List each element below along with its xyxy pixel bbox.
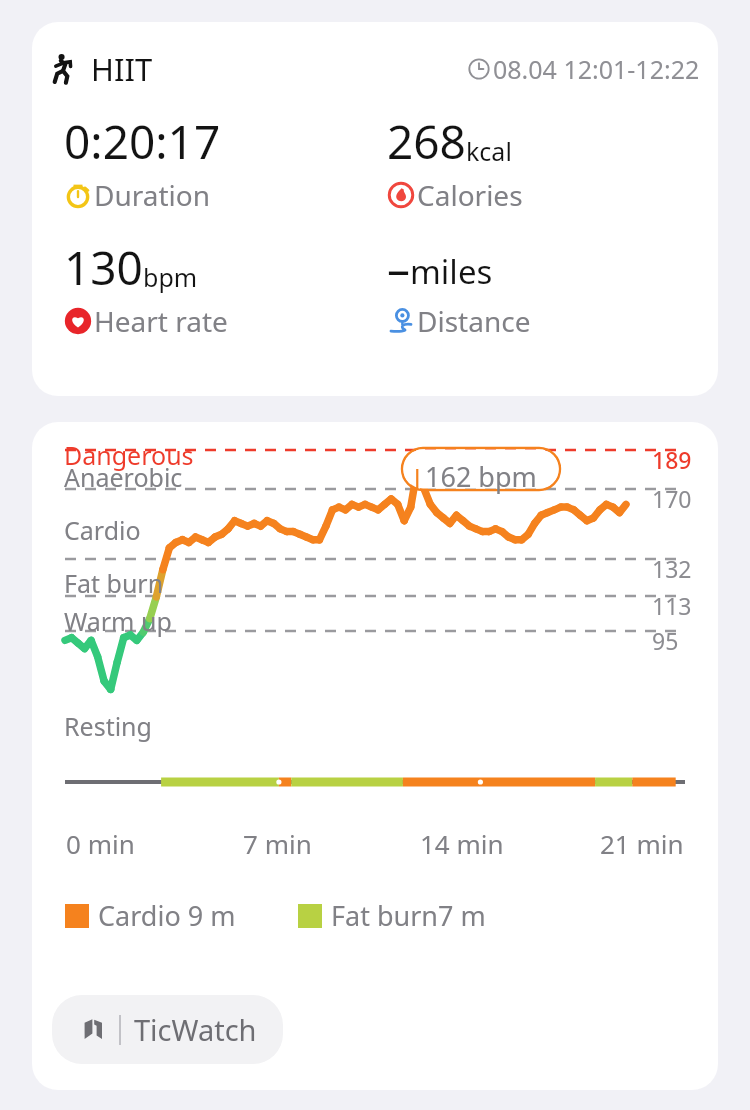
staticText: kcal: [466, 134, 512, 168]
staticText: 21 min: [600, 826, 684, 861]
staticText: 268: [387, 110, 466, 173]
staticText: 132: [652, 553, 692, 584]
staticText: Anaerobic: [64, 460, 183, 494]
staticText: Calories: [417, 176, 523, 214]
staticText: HIIT: [91, 48, 153, 90]
staticText: 0 min: [66, 826, 135, 861]
staticText: –: [387, 236, 410, 299]
staticText: 170: [652, 483, 692, 514]
staticText: 14 min: [420, 826, 504, 861]
button[interactable]: TicWatch: [52, 995, 283, 1064]
staticText: 162 bpm: [425, 458, 537, 495]
staticText: 7 min: [243, 826, 312, 861]
staticText: TicWatch: [134, 1010, 257, 1049]
staticText: 130: [64, 236, 143, 299]
staticText: 95: [652, 625, 679, 656]
staticText: Fat burn7 m: [331, 897, 486, 934]
staticText: Cardio 9 m: [98, 897, 236, 934]
staticText: 08.04 12:01-12:22: [493, 52, 700, 86]
staticText: 189: [652, 444, 692, 475]
staticText: Resting: [64, 709, 152, 743]
other: HIIT workout: [45, 51, 81, 87]
staticText: Fat burn: [64, 566, 164, 600]
staticText: Cardio: [64, 513, 141, 547]
staticText: Heart rate: [94, 302, 228, 340]
staticText: bpm: [143, 260, 198, 294]
staticText: Warm up: [64, 604, 172, 638]
staticText: Duration: [94, 176, 211, 214]
staticText: Dangerous: [64, 438, 194, 472]
staticText: miles: [410, 249, 493, 294]
staticText: Distance: [417, 302, 531, 340]
button[interactable]: HIIT workout: [32, 22, 718, 396]
staticText: 113: [652, 590, 692, 621]
staticText: 0:20:17: [64, 110, 221, 173]
